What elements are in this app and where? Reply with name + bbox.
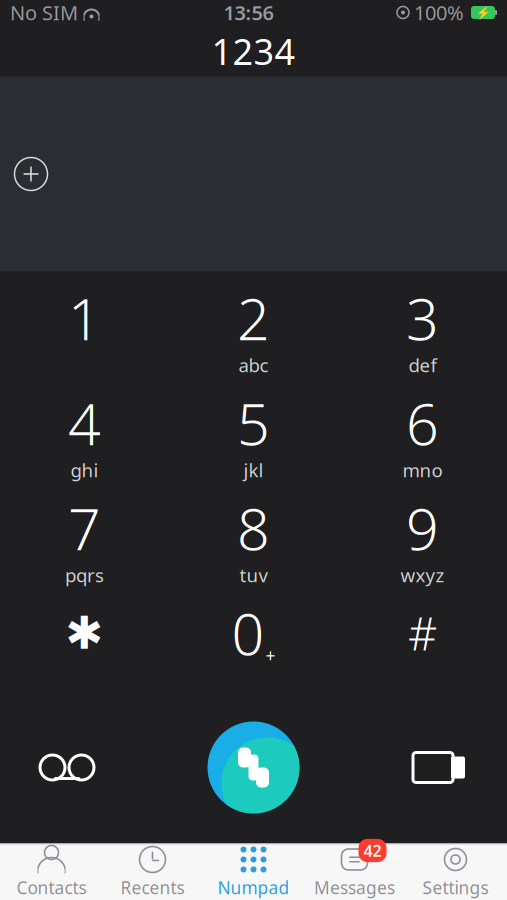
staticText: 42 xyxy=(363,840,381,861)
button[interactable]: ✱ xyxy=(0,586,169,691)
staticText: 6 xyxy=(406,385,439,461)
staticText: tuv xyxy=(239,563,267,587)
staticText: pqrs xyxy=(65,563,104,587)
button[interactable]: Call xyxy=(198,717,308,817)
button[interactable]: # xyxy=(338,586,507,691)
button[interactable]: Contacts xyxy=(1,844,102,900)
button[interactable]: 6 xyxy=(338,376,507,481)
staticText: jkl xyxy=(243,458,263,482)
button[interactable]: 9 xyxy=(338,481,507,586)
staticText: abc xyxy=(238,353,268,377)
staticText: Numpad xyxy=(217,876,289,899)
button[interactable]: Numpad xyxy=(203,844,304,900)
staticText: 0 xyxy=(231,595,264,671)
staticText: 8 xyxy=(237,490,270,566)
staticText: wxyz xyxy=(400,563,444,587)
staticText: 7 xyxy=(68,490,101,566)
button[interactable]: 42 xyxy=(304,844,405,900)
staticText: Recents xyxy=(120,876,184,899)
staticText: # xyxy=(408,603,437,663)
staticText: ✱ xyxy=(65,607,103,659)
staticText: ⚡ xyxy=(475,6,490,19)
button[interactable]: 0 xyxy=(169,586,338,691)
staticText: 1 xyxy=(68,280,101,356)
staticText: Contacts xyxy=(16,876,86,899)
staticText: 5 xyxy=(237,385,270,461)
staticText: def xyxy=(408,353,436,377)
staticText: Messages xyxy=(314,876,395,899)
button[interactable]: 1 xyxy=(0,271,169,376)
button[interactable]: Recents xyxy=(102,844,203,900)
button[interactable]: FaceTime video call xyxy=(385,722,495,812)
button[interactable]: Add number to contacts xyxy=(8,151,54,197)
button[interactable]: 7 xyxy=(0,481,169,586)
button[interactable]: 5 xyxy=(169,376,338,481)
button[interactable]: Settings xyxy=(405,844,506,900)
staticText: 1234 xyxy=(211,27,295,75)
button[interactable]: 4 xyxy=(0,376,169,481)
staticText: 100% xyxy=(414,0,464,26)
button[interactable]: 3 xyxy=(338,271,507,376)
staticText: 4 xyxy=(68,385,101,461)
staticText: + xyxy=(265,644,275,667)
staticText: No SIM xyxy=(10,0,78,26)
staticText: 2 xyxy=(237,280,270,356)
staticText: 13:56 xyxy=(223,0,273,26)
staticText: 3 xyxy=(406,280,439,356)
staticText: ghi xyxy=(70,458,98,482)
button[interactable]: 8 xyxy=(169,481,338,586)
staticText: 9 xyxy=(406,490,439,566)
staticText: Settings xyxy=(422,876,488,899)
staticText: mno xyxy=(402,458,442,482)
button[interactable]: Voicemail xyxy=(12,722,122,812)
button[interactable]: 2 xyxy=(169,271,338,376)
